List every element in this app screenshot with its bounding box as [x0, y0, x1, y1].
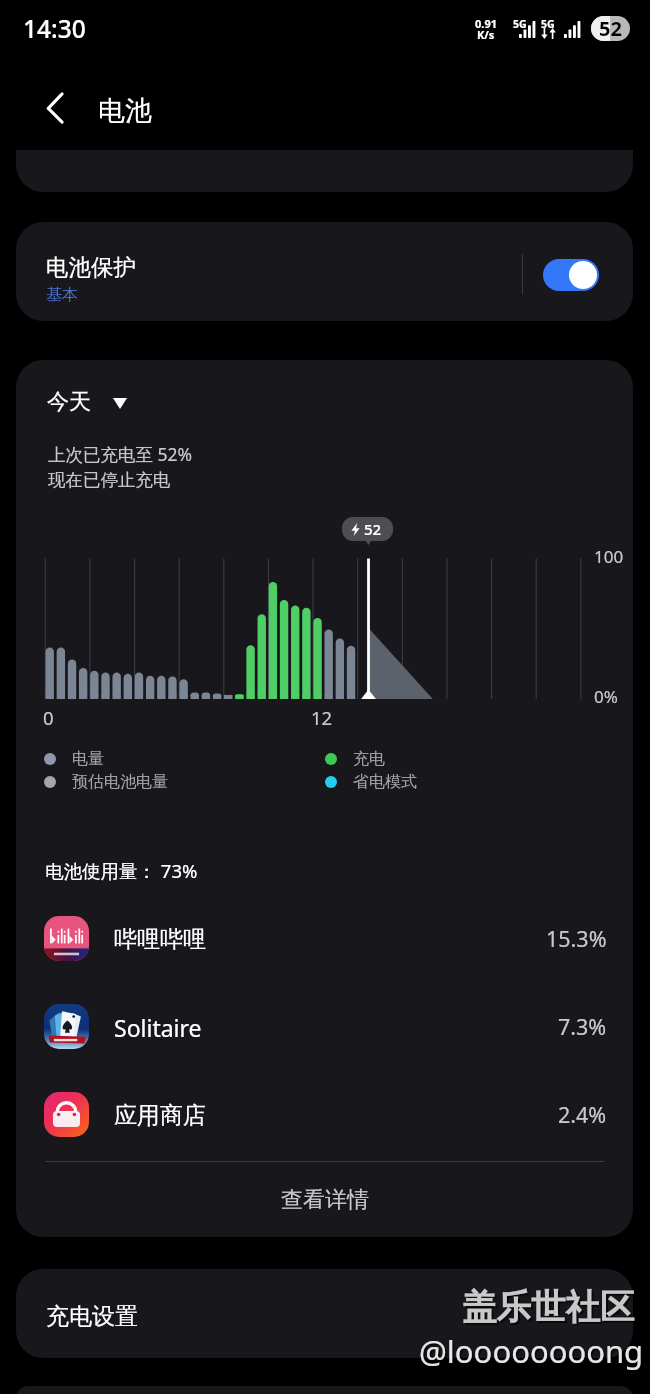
staticText: @loooooooong [419, 1330, 644, 1372]
staticText: 52 [364, 519, 382, 539]
staticText: 14:30 [23, 12, 86, 45]
staticText: 电量 [72, 749, 104, 769]
button[interactable]: Battery protection toggle [543, 259, 599, 291]
staticText: 0 [43, 705, 54, 730]
staticText: 基本 [46, 285, 78, 305]
staticText: 预估电池电量 [72, 772, 168, 792]
staticText: 查看详情 [281, 1186, 369, 1214]
staticText: 现在已停止充电 [48, 469, 171, 491]
button[interactable]: Solitaire [16, 982, 633, 1070]
staticText: 盖乐世社区 [462, 1286, 635, 1329]
staticText: @loooooooong [421, 1332, 646, 1374]
button[interactable]: Back [31, 84, 79, 132]
staticText: 5G [541, 17, 555, 31]
staticText: 电池保护 [46, 253, 136, 281]
staticText: 今天 [47, 388, 91, 416]
staticText: 0.91 [475, 16, 497, 31]
staticText: 应用商店 [114, 1101, 206, 1130]
button[interactable]: 哔哩哔哩 [16, 894, 633, 982]
staticText: 15.3% [546, 924, 607, 953]
staticText: 省电模式 [353, 772, 417, 792]
staticText: 52 [599, 16, 622, 40]
button[interactable]: 充电设置 [16, 1269, 633, 1358]
button[interactable]: 查看详情 [16, 1162, 633, 1237]
staticText: 7.3% [558, 1012, 607, 1041]
button[interactable]: 电池保护 [16, 222, 633, 321]
staticText: 100 [594, 545, 624, 568]
staticText: 电池 [98, 94, 152, 128]
staticText: 充电设置 [46, 1302, 138, 1331]
staticText: 充电 [353, 749, 385, 769]
staticText: 12 [311, 705, 333, 730]
staticText: 上次已充电至 52% [48, 442, 193, 466]
staticText: Solitaire [114, 1012, 202, 1043]
staticText: 5G [513, 17, 527, 31]
staticText: 盖乐世社区 [464, 1288, 637, 1331]
button[interactable]: 应用商店 [16, 1070, 633, 1158]
staticText: 哔哩哔哩 [114, 925, 206, 954]
staticText: K/s [477, 27, 495, 42]
staticText: 电池使用量： 73% [45, 858, 198, 883]
button[interactable]: 今天 [47, 388, 127, 416]
staticText: 0% [594, 685, 618, 708]
staticText: 2.4% [558, 1100, 607, 1129]
